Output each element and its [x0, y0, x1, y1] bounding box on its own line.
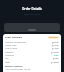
staticText: 1234 Market Street, Apt 5B: [5, 68, 31, 70]
staticText: Free: [54, 54, 59, 57]
staticText: #ORD-2024-0513: [24, 13, 40, 16]
staticText: $12.00: [52, 47, 59, 50]
staticText: Order Details: [22, 7, 42, 11]
staticText: Tax: [5, 57, 9, 60]
staticText: USB-C Cable: [5, 47, 18, 50]
button[interactable]: In Transit: [49, 36, 58, 39]
staticText: Total: [5, 61, 10, 64]
staticText: Shipping: [5, 54, 14, 57]
staticText: Delivery Address: [5, 65, 23, 68]
button[interactable]: [4, 23, 60, 32]
staticText: Wireless Headphones: [5, 41, 27, 44]
staticText: $129.60: [51, 61, 59, 64]
staticText: $9.60: [53, 57, 59, 60]
staticText: Order Summary: [5, 36, 23, 39]
staticText: Phone Case: [5, 44, 17, 47]
staticText: $19.00: [52, 44, 59, 47]
staticText: Subtotal: [5, 51, 14, 54]
staticText: $89.00: [52, 41, 59, 44]
staticText: In Transit: [49, 36, 58, 39]
staticText: $120.00: [51, 51, 59, 54]
